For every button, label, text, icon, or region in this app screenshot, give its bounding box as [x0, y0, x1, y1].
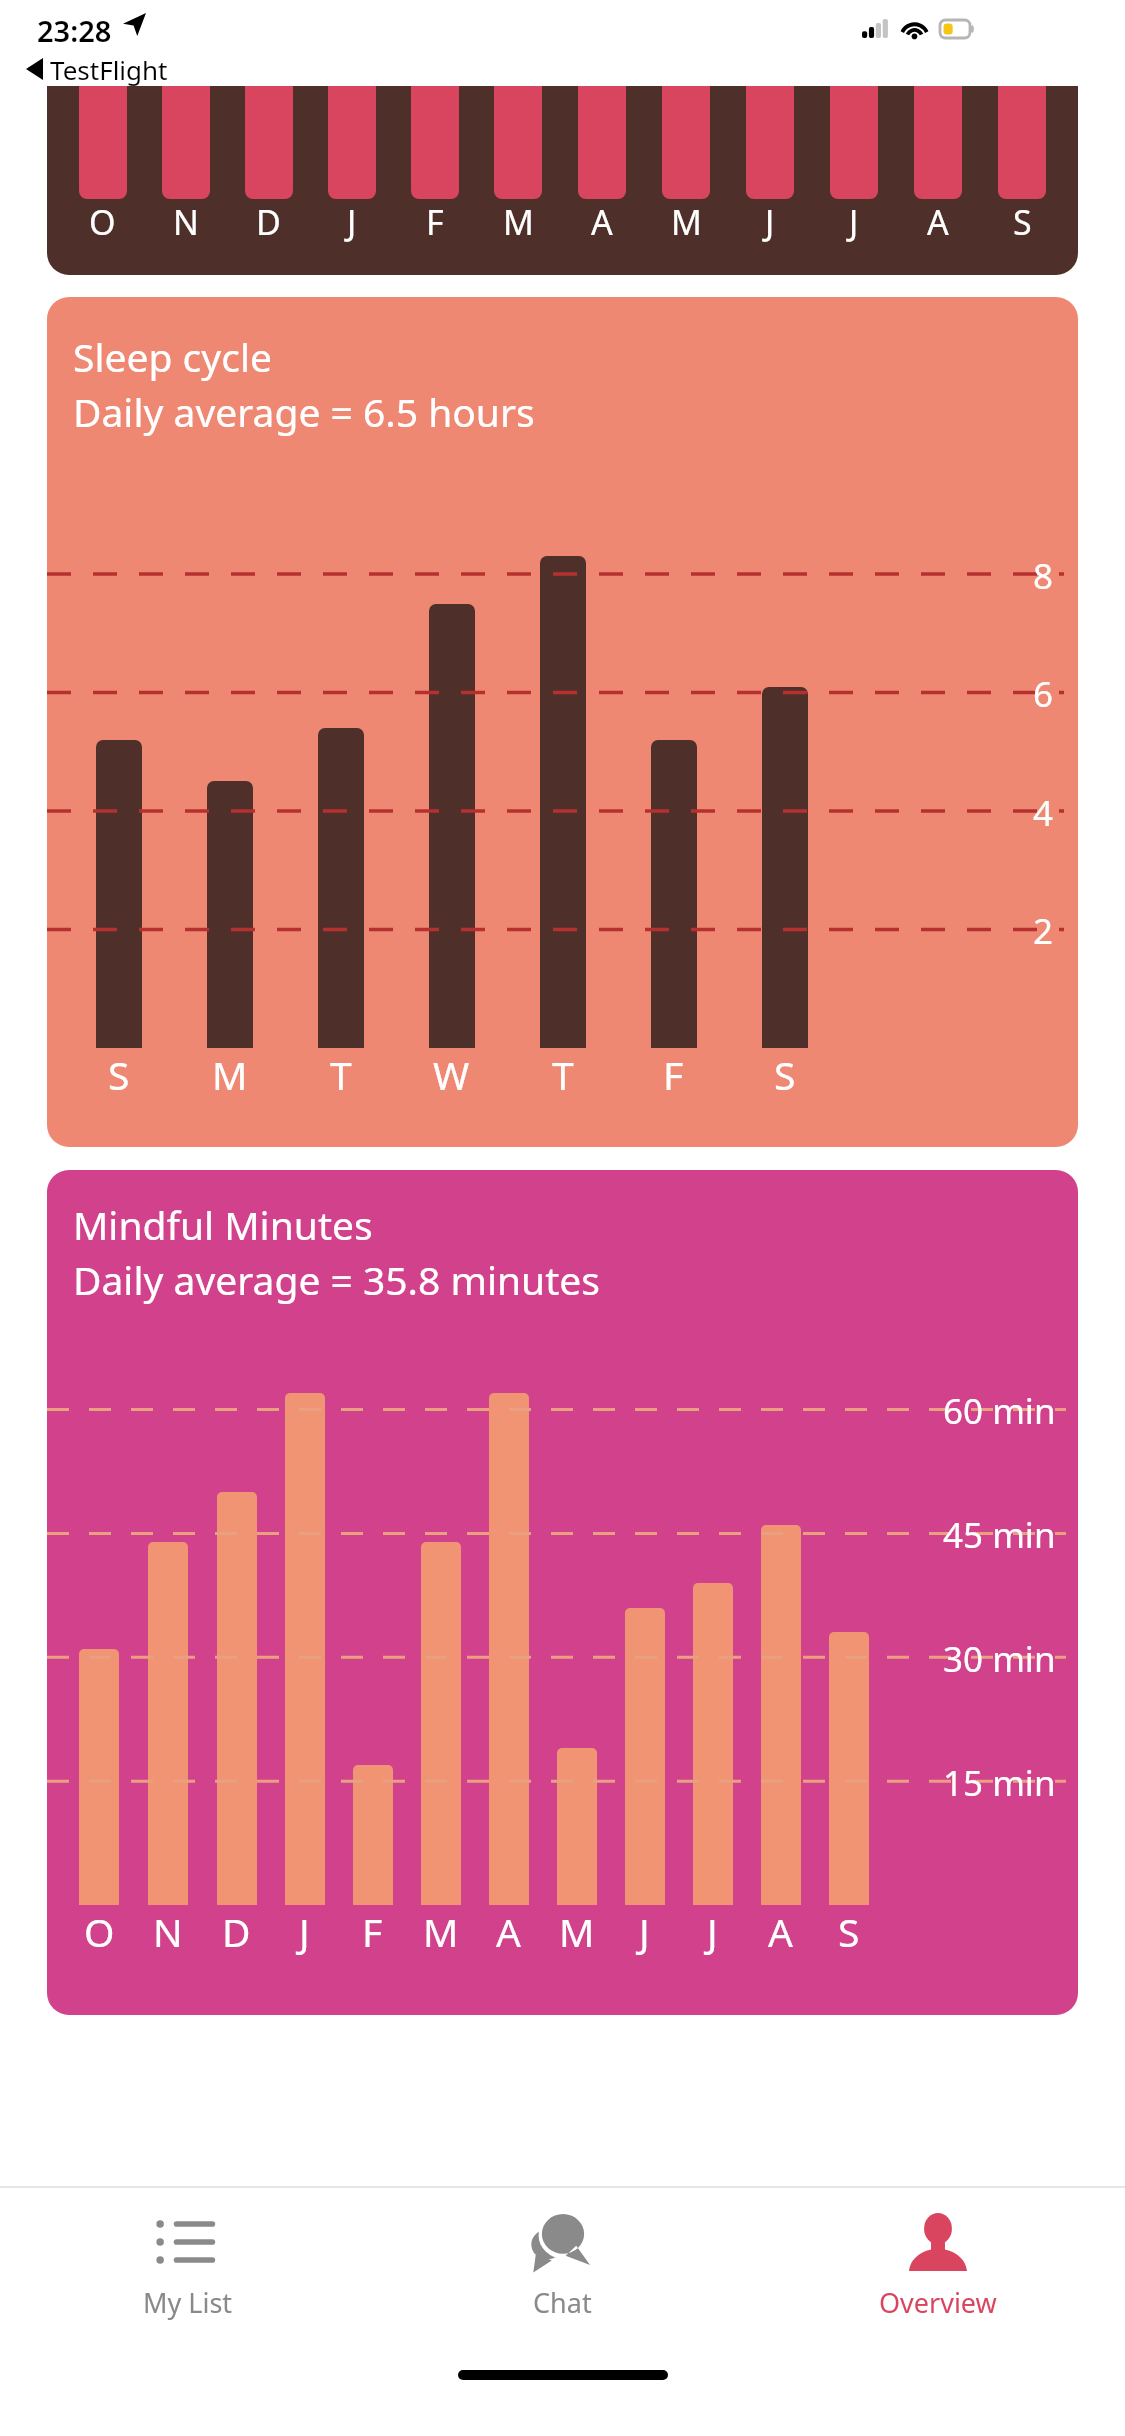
staticText: S — [838, 1905, 860, 1958]
staticText: 4 — [1033, 789, 1054, 837]
staticText: 6 — [1033, 670, 1054, 718]
staticText: Daily average = 6.5 hours — [73, 385, 535, 438]
staticText: Chat — [533, 2284, 592, 2321]
staticText: J — [765, 199, 775, 245]
button[interactable]: Mindful Minutes — [47, 1170, 1078, 2015]
staticText: J — [849, 199, 859, 245]
staticText: N — [173, 199, 199, 245]
staticText: 8 — [1033, 552, 1054, 600]
staticText: A — [768, 1905, 793, 1958]
staticText: M — [559, 1905, 595, 1958]
staticText: 15 min — [943, 1759, 1056, 1807]
staticText: T — [552, 1048, 574, 1101]
staticText: J — [639, 1905, 650, 1958]
staticText: My List — [143, 2284, 233, 2321]
staticText: M — [212, 1048, 248, 1101]
staticText: 23:28 — [37, 11, 112, 50]
staticText: Overview — [879, 2284, 997, 2321]
staticText: D — [256, 199, 281, 245]
staticText: 60 min — [943, 1387, 1056, 1435]
staticText: F — [362, 1905, 383, 1958]
staticText: S — [108, 1048, 130, 1101]
staticText: A — [496, 1905, 521, 1958]
staticText: 2 — [1033, 907, 1054, 955]
staticText: J — [347, 199, 357, 245]
staticText: Mindful Minutes — [73, 1198, 373, 1251]
staticText: D — [222, 1905, 251, 1958]
staticText: M — [423, 1905, 459, 1958]
staticText: 30 min — [943, 1635, 1056, 1683]
button[interactable]: My List — [0, 2188, 375, 2348]
staticText: Sleep cycle — [73, 330, 272, 383]
staticText: M — [671, 199, 702, 245]
staticText: T — [330, 1048, 352, 1101]
staticText: M — [503, 199, 534, 245]
staticText: S — [1013, 199, 1032, 245]
staticText: W — [433, 1048, 470, 1101]
staticText: F — [663, 1048, 684, 1101]
staticText: TestFlight — [50, 52, 168, 86]
staticText: J — [707, 1905, 718, 1958]
staticText: A — [591, 199, 613, 245]
button[interactable]: Overview — [750, 2188, 1125, 2348]
button[interactable]: Sleep cycle — [47, 297, 1078, 1147]
staticText: O — [89, 199, 116, 245]
staticText: J — [299, 1905, 310, 1958]
button[interactable]: O — [47, 86, 1078, 275]
staticText: N — [153, 1905, 183, 1958]
staticText: F — [426, 199, 444, 245]
staticText: Daily average = 35.8 minutes — [73, 1253, 600, 1306]
staticText: 45 min — [943, 1511, 1056, 1559]
staticText: O — [84, 1905, 115, 1958]
staticText: A — [927, 199, 949, 245]
staticText: S — [774, 1048, 796, 1101]
button[interactable]: Chat — [375, 2188, 750, 2348]
